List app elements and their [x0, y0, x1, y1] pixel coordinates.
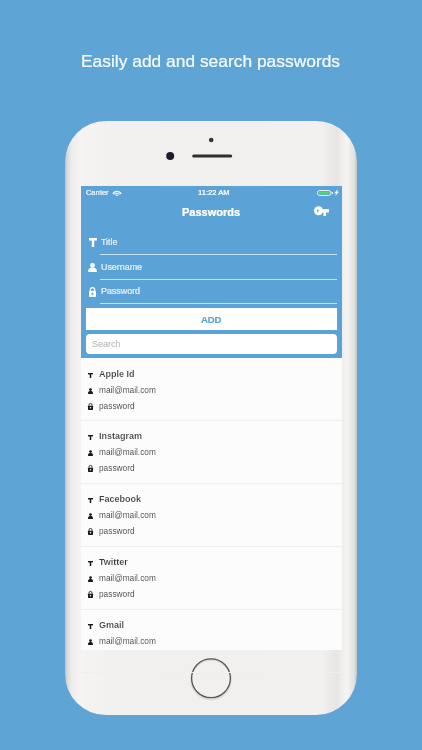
staticText: password: [99, 463, 135, 472]
staticText: Title: [101, 237, 118, 247]
staticText: Search: [92, 339, 121, 349]
staticText: Passwords: [182, 206, 241, 218]
staticText: Facebook: [99, 494, 142, 504]
button[interactable]: Add password: [309, 201, 333, 222]
button[interactable]: Instagram: [81, 421, 342, 483]
staticText: Password: [101, 286, 141, 296]
staticText: mail@mail.com: [99, 636, 156, 645]
staticText: password: [99, 589, 135, 598]
button[interactable]: Twitter: [81, 547, 342, 609]
staticText: password: [99, 401, 135, 410]
staticText: 11:22 AM: [198, 188, 230, 196]
staticText: ADD: [201, 314, 222, 325]
staticText: Twitter: [99, 557, 128, 567]
staticText: Carrier: [86, 188, 109, 196]
button[interactable]: Search: [86, 334, 337, 354]
staticText: password: [99, 526, 135, 535]
staticText: Easily add and search passwords: [81, 51, 341, 70]
staticText: Instagram: [99, 431, 143, 441]
staticText: Gmail: [99, 620, 125, 630]
staticText: Username: [101, 262, 143, 272]
staticText: mail@mail.com: [99, 510, 156, 519]
staticText: Apple Id: [99, 369, 135, 379]
staticText: mail@mail.com: [99, 573, 156, 582]
button[interactable]: ADD: [86, 308, 337, 330]
staticText: mail@mail.com: [99, 385, 156, 394]
button[interactable]: Facebook: [81, 484, 342, 546]
button[interactable]: Gmail: [81, 610, 342, 672]
staticText: mail@mail.com: [99, 447, 156, 456]
button[interactable]: Apple Id: [81, 359, 342, 420]
